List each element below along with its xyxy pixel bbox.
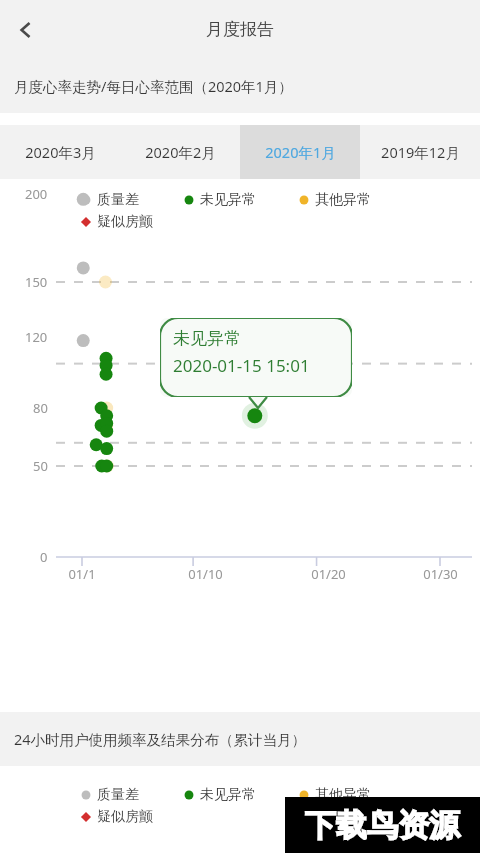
staticText: 2020年1月: [265, 142, 336, 162]
button[interactable]: 质量差: [80, 191, 139, 209]
button[interactable]: 疑似房颤: [80, 808, 153, 826]
staticText: 未见异常: [173, 328, 241, 349]
staticText: 2020年3月: [25, 142, 96, 162]
staticText: 其他异常: [315, 786, 371, 804]
staticText: 下载鸟资源: [305, 806, 460, 845]
staticText: 24小时用户使用频率及结果分布（累计当月）: [14, 729, 307, 749]
staticText: 0: [40, 548, 48, 566]
button[interactable]: 2019年12月: [360, 125, 480, 179]
staticText: 01/1: [68, 565, 96, 583]
staticText: 月度报告: [206, 19, 274, 40]
staticText: 月度心率走势/每日心率范围（2020年1月）: [14, 76, 293, 96]
button[interactable]: 疑似房颤: [80, 213, 153, 231]
staticText: 2019年12月: [381, 142, 460, 162]
button[interactable]: 其他异常: [298, 786, 371, 804]
button[interactable]: 2020年3月: [0, 125, 120, 179]
staticText: 50: [33, 457, 48, 475]
staticText: 疑似房颤: [97, 213, 153, 231]
staticText: 疑似房颤: [97, 808, 153, 826]
button[interactable]: 未见异常: [183, 786, 256, 804]
button[interactable]: 2020年1月: [240, 125, 360, 179]
button[interactable]: 未见异常: [183, 191, 256, 209]
button[interactable]: 未见异常: [160, 318, 352, 397]
button[interactable]: 质量差: [80, 786, 139, 804]
staticText: 2020-01-15 15:01: [173, 354, 310, 377]
button[interactable]: 其他异常: [298, 191, 371, 209]
staticText: 未见异常: [200, 786, 256, 804]
button[interactable]: Back: [0, 4, 52, 56]
staticText: 2020年2月: [145, 142, 216, 162]
staticText: 01/10: [188, 565, 223, 583]
staticText: 150: [25, 273, 48, 291]
button[interactable]: 2020年2月: [120, 125, 240, 179]
staticText: 其他异常: [315, 191, 371, 209]
staticText: 01/30: [423, 565, 458, 583]
staticText: 200: [25, 185, 48, 203]
staticText: 80: [33, 399, 48, 417]
staticText: 01/20: [311, 565, 346, 583]
staticText: 质量差: [97, 786, 139, 804]
staticText: 120: [25, 328, 48, 346]
staticText: 质量差: [97, 191, 139, 209]
staticText: 未见异常: [200, 191, 256, 209]
